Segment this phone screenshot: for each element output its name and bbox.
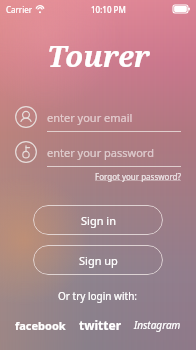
button[interactable]: Sign in [33,205,163,235]
staticText: Sign up [79,253,118,268]
button[interactable]: Forgot your password? [95,171,181,182]
button[interactable]: twitter [76,314,125,336]
staticText: Or try login with: [58,289,138,303]
button[interactable]: Sign up [33,245,163,275]
staticText: twitter [79,317,122,333]
staticText: Forgot your password? [95,171,181,182]
button[interactable]: Instagram [131,315,184,335]
button[interactable]: Password [15,137,181,167]
button[interactable]: facebook [12,315,69,336]
staticText: enter your email [47,110,133,125]
staticText: Carrier [6,4,33,15]
staticText: Instagram [134,318,181,332]
staticText: facebook [15,318,66,333]
staticText: 10:10 PM [91,4,126,15]
staticText: Sign in [81,213,116,228]
other: Email [15,106,37,128]
button[interactable]: Email [15,102,181,132]
other: Password [15,141,37,163]
staticText: enter your password [47,145,154,160]
staticText: Tourer [47,36,150,75]
